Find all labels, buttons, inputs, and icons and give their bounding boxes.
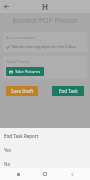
staticText: Task Pictures bbox=[6, 59, 31, 64]
button[interactable]: Save Draft bbox=[6, 86, 38, 96]
button[interactable]: Yes bbox=[4, 147, 90, 153]
button[interactable]: Recents bbox=[14, 170, 22, 178]
staticText: H bbox=[42, 1, 49, 12]
staticText: No bbox=[4, 161, 11, 167]
staticText: Yes bbox=[4, 147, 12, 153]
staticText: Save Draft bbox=[11, 88, 34, 94]
staticText: Take Pictures bbox=[15, 69, 41, 74]
button[interactable]: Take Pictures bbox=[6, 67, 44, 76]
button[interactable]: Back bbox=[2, 2, 11, 11]
staticText: End Task bbox=[59, 88, 78, 94]
staticText: Any comments? bbox=[6, 35, 36, 40]
button[interactable]: Home bbox=[41, 170, 49, 178]
staticText: Bacardi POP Photos bbox=[4, 16, 86, 26]
button[interactable]: Needs new signages for the lobby. bbox=[6, 44, 84, 49]
button[interactable]: End Task bbox=[52, 86, 84, 96]
staticText: End Task Report bbox=[4, 133, 39, 139]
button[interactable]: No bbox=[4, 161, 90, 167]
button[interactable]: Back bbox=[68, 170, 76, 178]
staticText: Needs new signages for the lobby. bbox=[12, 44, 77, 49]
